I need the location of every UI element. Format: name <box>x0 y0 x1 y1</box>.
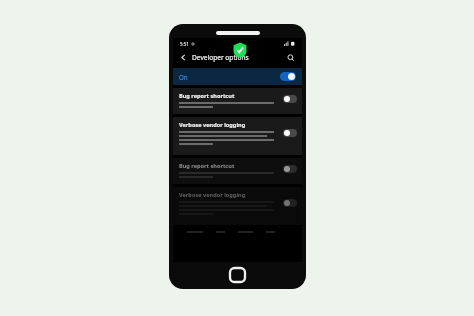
staticText: Developer options <box>192 53 249 62</box>
staticText: Verbose vendor logging <box>179 121 246 129</box>
button[interactable]: Back <box>178 52 189 63</box>
staticText: Bug report shortcut <box>179 162 235 170</box>
button[interactable]: Bug report shortcut <box>173 158 302 184</box>
button[interactable]: Bug report shortcut <box>173 88 302 114</box>
button[interactable]: Search <box>285 52 297 64</box>
staticText: Bug report shortcut <box>179 92 235 100</box>
staticText: On <box>179 73 188 81</box>
button[interactable]: Verbose vendor logging <box>173 187 302 225</box>
staticText: Verbose vendor logging <box>179 191 246 199</box>
staticText: 5:51 <box>180 41 189 47</box>
button[interactable]: Verbose vendor logging <box>173 117 302 155</box>
button[interactable]: On <box>173 68 302 85</box>
button[interactable]: Home <box>230 268 245 282</box>
